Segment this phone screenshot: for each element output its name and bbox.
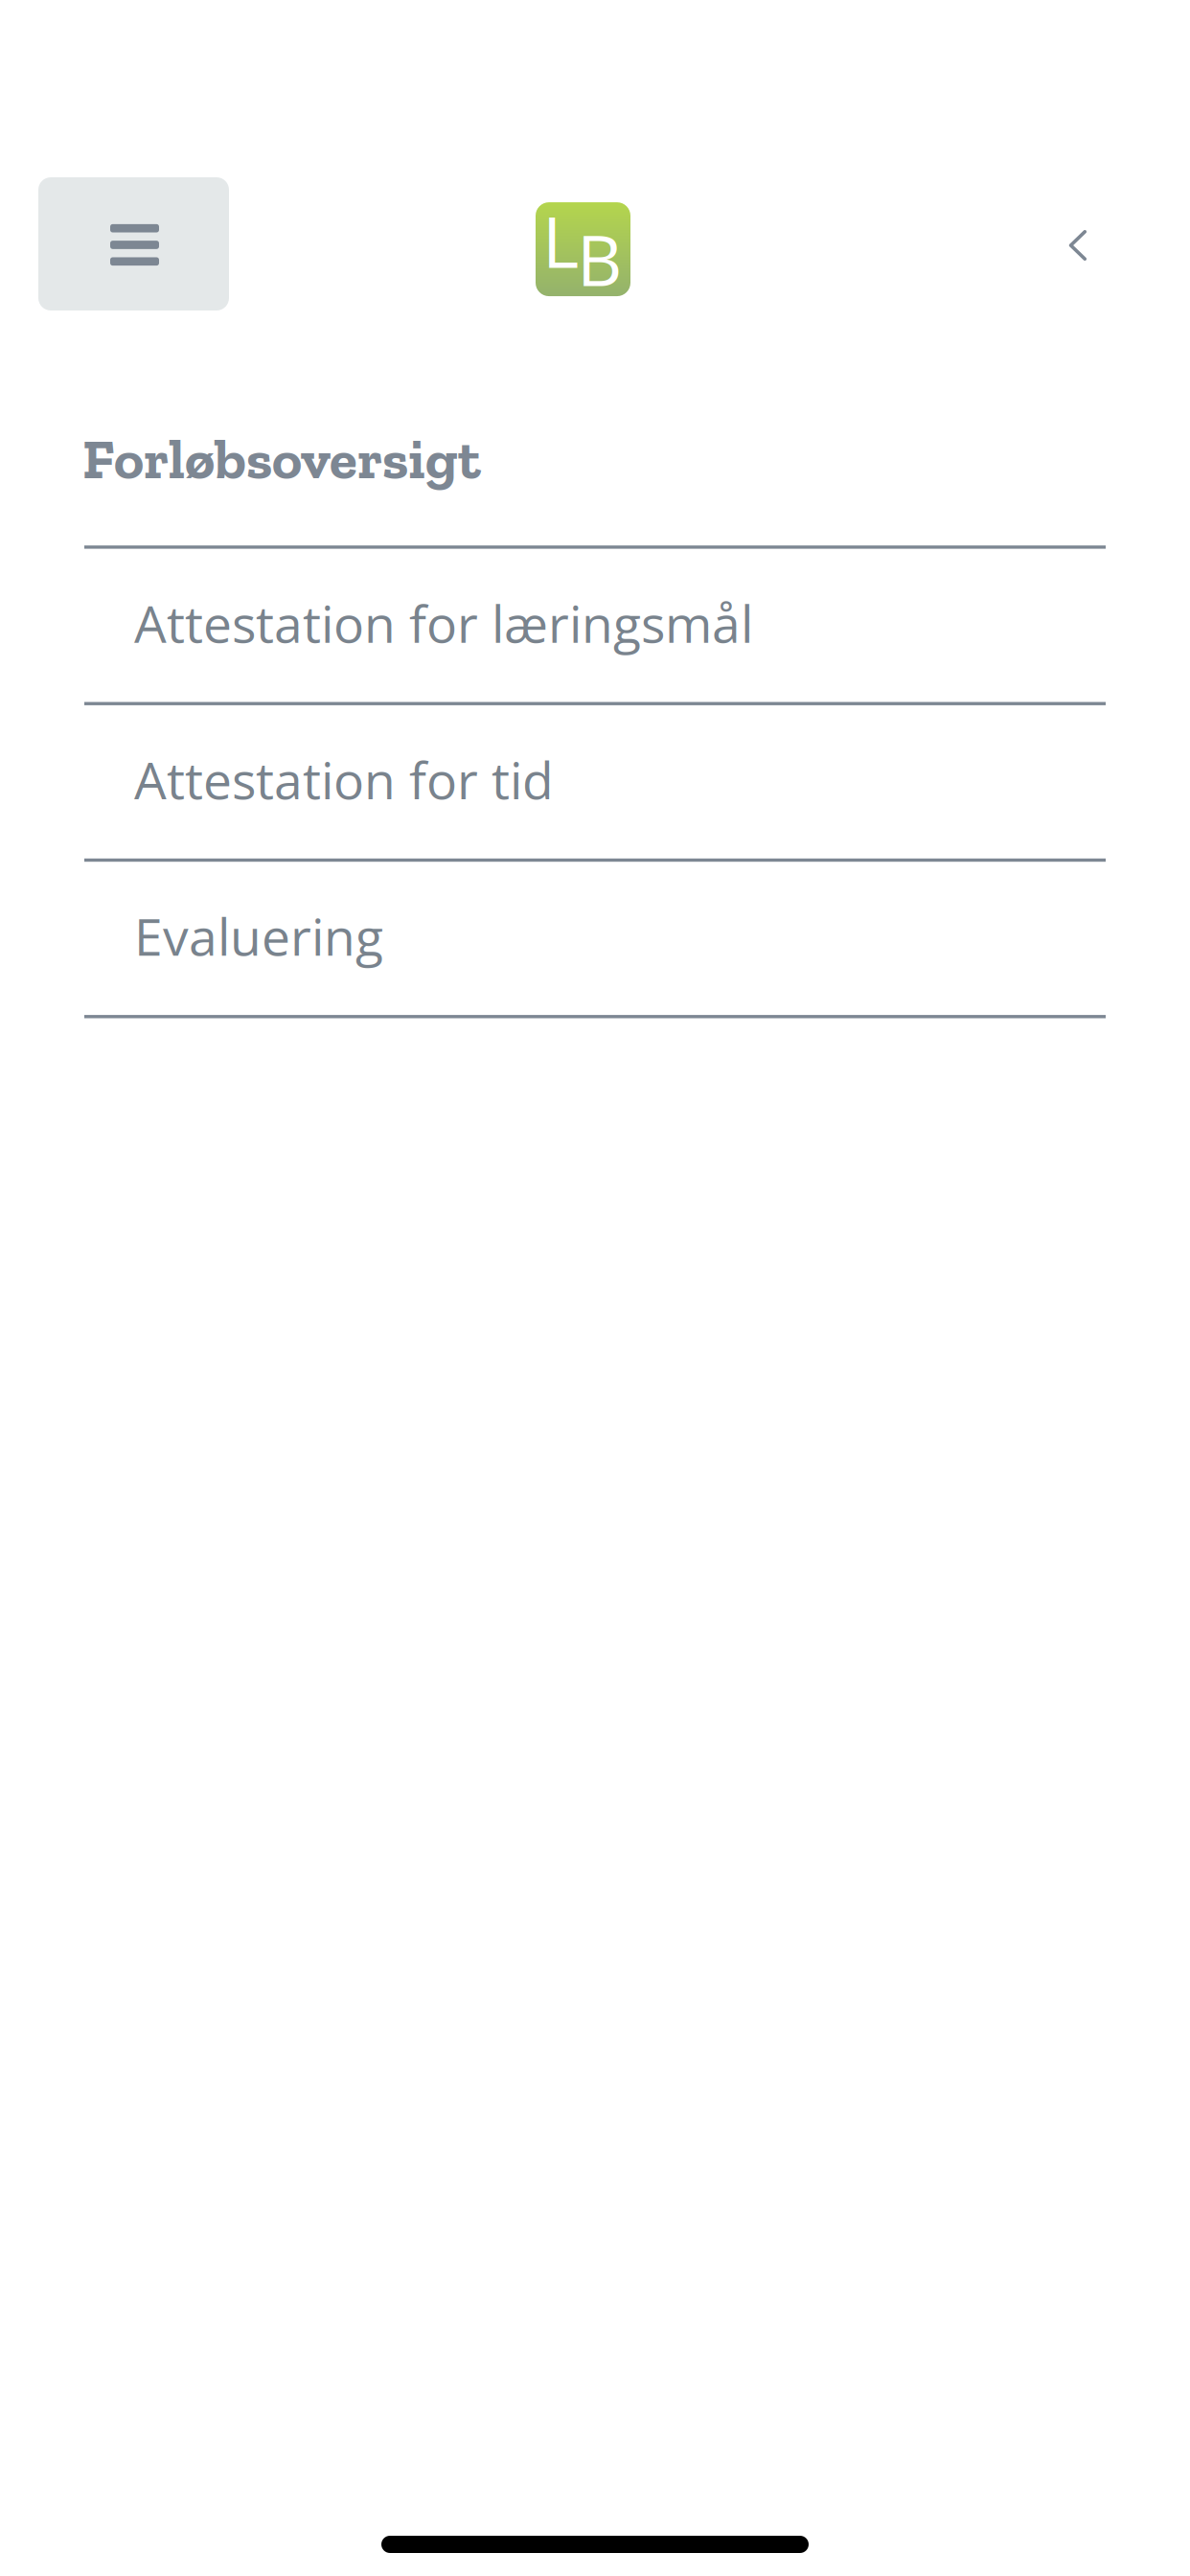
staticText: Forløbsoversigt — [82, 425, 481, 493]
button[interactable]: Attestation for læringsmål — [84, 549, 1106, 705]
staticText: L — [542, 193, 579, 288]
staticText: B — [577, 211, 622, 307]
button[interactable]: Evaluering — [84, 862, 1106, 1018]
button[interactable]: Menu — [38, 177, 229, 310]
staticText: Evaluering — [134, 901, 383, 971]
button[interactable]: Back — [1034, 201, 1122, 289]
button[interactable]: Attestation for tid — [84, 705, 1106, 862]
staticText: Attestation for tid — [134, 745, 554, 814]
staticText: Attestation for læringsmål — [134, 588, 753, 658]
